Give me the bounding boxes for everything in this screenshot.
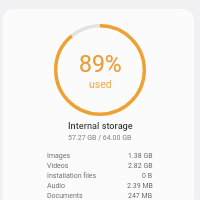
staticText: 2.39 MB — [127, 182, 153, 190]
button[interactable]: Images — [47, 151, 153, 161]
button[interactable]: Audio — [47, 181, 153, 191]
button[interactable]: Videos — [47, 161, 153, 171]
staticText: 247 MB — [128, 192, 153, 200]
staticText: 2.82 GB — [128, 162, 153, 170]
staticText: Videos — [47, 162, 69, 170]
staticText: 57.27 GB / 64.00 GB — [68, 134, 132, 142]
button[interactable]: Documents — [47, 191, 153, 200]
staticText: Installation files — [47, 172, 97, 180]
staticText: 89% — [79, 51, 122, 78]
button[interactable]: Installation files — [47, 171, 153, 181]
staticText: Internal storage — [68, 120, 133, 131]
staticText: 0 B — [142, 172, 153, 180]
staticText: Images — [47, 152, 71, 160]
staticText: 1.38 GB — [128, 152, 153, 160]
staticText: Documents — [47, 192, 83, 200]
staticText: Audio — [47, 182, 66, 190]
staticText: used — [89, 78, 112, 90]
